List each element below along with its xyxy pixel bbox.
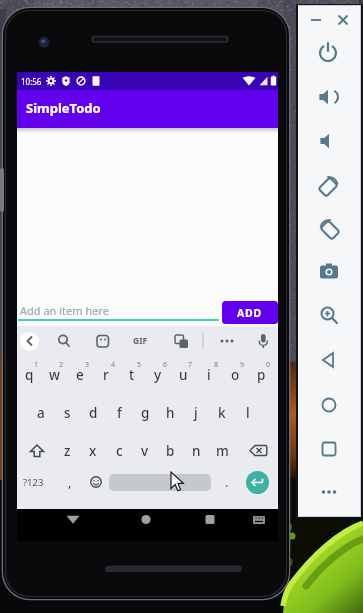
button[interactable]: z <box>27 437 107 465</box>
button[interactable]: s <box>27 399 107 427</box>
button[interactable] <box>316 436 342 462</box>
button[interactable]: k <box>182 399 262 427</box>
button[interactable]: l <box>208 399 288 427</box>
staticText: 5 <box>137 360 142 370</box>
button[interactable]: v <box>105 437 185 465</box>
button[interactable] <box>316 216 342 242</box>
button[interactable] <box>93 331 113 351</box>
staticText: f <box>117 404 122 422</box>
staticText: ?123 <box>23 476 44 489</box>
button[interactable] <box>88 472 104 492</box>
staticText: 9 <box>240 360 245 370</box>
button[interactable] <box>17 298 219 323</box>
staticText: o <box>231 366 240 384</box>
staticText: m <box>216 442 229 460</box>
button[interactable] <box>20 332 39 351</box>
button[interactable] <box>315 40 341 66</box>
button[interactable]: x <box>53 437 133 465</box>
staticText: l <box>246 404 250 422</box>
button[interactable] <box>217 331 237 351</box>
button[interactable]: i <box>169 361 249 389</box>
staticText: ADD <box>237 306 263 320</box>
staticText: 4 <box>111 360 116 370</box>
button[interactable] <box>316 479 342 505</box>
button[interactable]: c <box>79 437 159 465</box>
button[interactable]: m <box>182 437 262 465</box>
button[interactable]: n <box>156 437 236 465</box>
button[interactable]: f <box>79 399 159 427</box>
button[interactable]: ADD <box>222 301 278 324</box>
staticText: GIF <box>133 335 148 347</box>
button[interactable] <box>315 128 341 154</box>
staticText: u <box>179 366 188 384</box>
button[interactable]: t <box>92 361 172 389</box>
staticText: i <box>207 366 211 384</box>
staticText: 3 <box>85 360 90 370</box>
button[interactable] <box>109 474 211 491</box>
staticText: a <box>37 404 45 422</box>
button[interactable]: w <box>14 361 94 389</box>
button[interactable]: . <box>187 468 267 496</box>
button[interactable] <box>22 438 50 462</box>
staticText: q <box>25 366 34 384</box>
button[interactable] <box>130 331 150 351</box>
staticText: 8 <box>214 360 219 370</box>
button[interactable] <box>198 509 224 531</box>
staticText: j <box>194 404 198 422</box>
button[interactable] <box>316 347 342 373</box>
staticText: 7 <box>188 360 193 370</box>
button[interactable] <box>54 331 74 351</box>
button[interactable]: y <box>118 361 198 389</box>
staticText: x <box>89 442 97 460</box>
button[interactable] <box>244 438 272 462</box>
button[interactable] <box>330 7 356 33</box>
staticText: d <box>89 404 98 422</box>
staticText: , <box>68 473 72 491</box>
button[interactable] <box>134 509 160 531</box>
staticText: 0 <box>266 360 271 370</box>
button[interactable] <box>316 392 342 418</box>
staticText: 6 <box>163 360 168 370</box>
button[interactable]: ?123 <box>0 468 73 496</box>
staticText: r <box>103 366 109 384</box>
button[interactable] <box>316 173 342 199</box>
staticText: n <box>192 442 201 460</box>
staticText: 10:56 <box>21 76 42 87</box>
button[interactable] <box>316 258 342 284</box>
staticText: e <box>76 366 84 384</box>
staticText: SimpleTodo <box>26 99 101 117</box>
button[interactable]: p <box>221 361 301 389</box>
staticText: k <box>218 404 226 422</box>
button[interactable] <box>303 7 329 33</box>
button[interactable]: d <box>53 399 133 427</box>
button[interactable]: r <box>66 361 146 389</box>
button[interactable] <box>246 471 269 494</box>
button[interactable]: b <box>130 437 210 465</box>
staticText: 2 <box>59 360 64 370</box>
button[interactable]: , <box>30 468 110 496</box>
button[interactable]: g <box>105 399 185 427</box>
button[interactable] <box>60 509 86 531</box>
staticText: g <box>141 404 150 422</box>
button[interactable]: e <box>40 361 120 389</box>
button[interactable]: q <box>0 361 69 389</box>
button[interactable]: u <box>143 361 223 389</box>
staticText: 1 <box>34 360 39 370</box>
staticText: b <box>166 442 175 460</box>
button[interactable] <box>253 331 273 351</box>
staticText: c <box>116 442 123 460</box>
button[interactable]: j <box>156 399 236 427</box>
button[interactable] <box>315 84 341 110</box>
button[interactable]: h <box>130 399 210 427</box>
button[interactable]: a <box>1 399 81 427</box>
staticText: v <box>141 442 149 460</box>
button[interactable] <box>169 331 189 351</box>
button[interactable]: o <box>195 361 275 389</box>
staticText: w <box>49 366 60 384</box>
staticText: z <box>64 442 71 460</box>
button[interactable] <box>316 302 342 328</box>
staticText: Add an item here <box>20 303 109 318</box>
staticText: t <box>129 366 135 384</box>
staticText: h <box>166 404 175 422</box>
staticText: y <box>154 366 162 384</box>
